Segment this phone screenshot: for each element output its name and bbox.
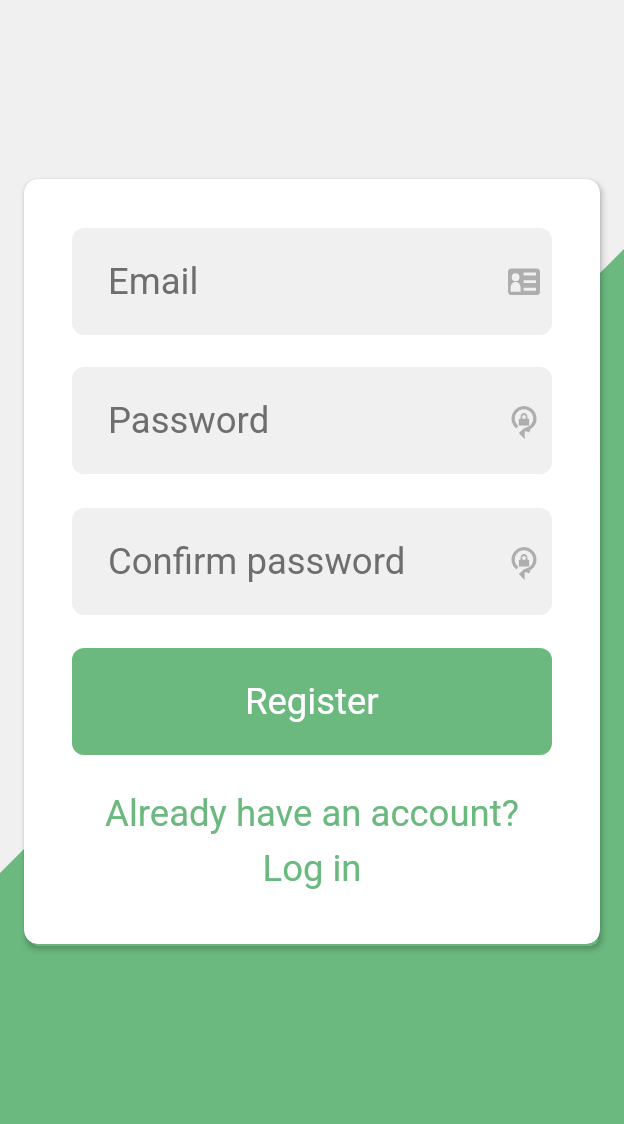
button[interactable]: Register [72, 648, 552, 755]
other: Show password [504, 542, 544, 582]
button[interactable]: Email [72, 228, 552, 335]
staticText: Already have an account? [105, 792, 519, 835]
staticText: Email [108, 260, 504, 303]
staticText: Register [245, 680, 379, 723]
button[interactable]: Confirm password [72, 508, 552, 615]
other: Show password [504, 401, 544, 441]
button[interactable]: Already have an account? [72, 792, 552, 890]
staticText: Confirm password [108, 540, 504, 583]
other: Contact card [504, 262, 544, 302]
button[interactable]: Password [72, 367, 552, 474]
staticText: Log in [262, 847, 362, 890]
staticText: Password [108, 399, 504, 442]
